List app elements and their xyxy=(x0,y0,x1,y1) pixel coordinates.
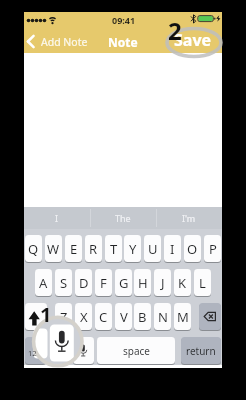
staticText: 12 xyxy=(28,348,37,358)
staticText: C xyxy=(99,308,108,326)
button[interactable]: D xyxy=(75,269,92,297)
button[interactable]: O xyxy=(184,235,201,263)
staticText: W xyxy=(47,240,60,258)
staticText: K xyxy=(178,274,187,292)
staticText: Z xyxy=(60,308,68,326)
staticText: Y xyxy=(129,240,137,258)
button[interactable]: E xyxy=(65,235,82,263)
button[interactable]: return xyxy=(181,337,221,365)
staticText: P xyxy=(209,240,217,258)
button[interactable]: F xyxy=(95,269,112,297)
button[interactable]: Add Note xyxy=(36,34,92,49)
button[interactable] xyxy=(199,303,221,331)
button[interactable]: Y xyxy=(124,235,141,263)
staticText: R xyxy=(89,240,98,258)
staticText: I'm xyxy=(182,212,196,224)
button[interactable]: A xyxy=(35,269,52,297)
button[interactable]: P xyxy=(204,235,221,263)
button[interactable]: J xyxy=(154,269,171,297)
button[interactable]: H xyxy=(134,269,151,297)
button[interactable]: K xyxy=(174,269,191,297)
staticText: V xyxy=(120,308,128,326)
staticText: U xyxy=(148,240,158,258)
staticText: D xyxy=(79,274,89,292)
button[interactable]: The xyxy=(101,208,145,227)
button[interactable]: Q xyxy=(25,235,42,263)
button[interactable]: space xyxy=(97,337,175,365)
button[interactable]: I'm xyxy=(167,208,211,227)
button[interactable] xyxy=(73,337,94,365)
button[interactable]: V xyxy=(115,303,132,331)
staticText: return xyxy=(186,344,216,358)
button[interactable]: Save xyxy=(173,29,213,51)
button[interactable]: W xyxy=(45,235,62,263)
staticText: 09:41 xyxy=(112,14,136,26)
staticText: The xyxy=(115,212,131,224)
staticText: space xyxy=(123,344,150,358)
staticText: I xyxy=(170,240,175,258)
staticText: B xyxy=(138,308,147,326)
staticText: J xyxy=(161,274,165,292)
staticText: M xyxy=(177,308,189,326)
button[interactable]: U xyxy=(144,235,161,263)
button[interactable]: C xyxy=(95,303,112,331)
staticText: H xyxy=(138,274,148,292)
button[interactable]: L xyxy=(194,269,211,297)
button[interactable] xyxy=(25,303,47,331)
button[interactable]: R xyxy=(85,235,102,263)
button[interactable]: X xyxy=(75,303,92,331)
staticText: Note xyxy=(108,34,138,49)
staticText: N xyxy=(158,308,168,326)
staticText: O xyxy=(187,240,198,258)
staticText: 2 xyxy=(168,14,182,40)
button[interactable]: I xyxy=(35,208,79,227)
button[interactable] xyxy=(25,337,46,365)
button[interactable]: Z xyxy=(55,303,72,331)
staticText: L xyxy=(199,274,206,292)
staticText: Save xyxy=(174,29,212,51)
button[interactable]: I xyxy=(164,235,181,263)
staticText: G xyxy=(119,274,129,292)
button[interactable]: G xyxy=(115,269,132,297)
button[interactable]: N xyxy=(154,303,171,331)
button[interactable]: B xyxy=(134,303,151,331)
button[interactable]: S xyxy=(55,269,72,297)
staticText: E xyxy=(70,240,78,258)
staticText: 1 xyxy=(40,301,52,323)
staticText: F xyxy=(100,274,107,292)
staticText: X xyxy=(80,308,88,326)
staticText: A xyxy=(39,274,48,292)
button[interactable]: M xyxy=(174,303,191,331)
staticText: Q xyxy=(28,240,39,258)
staticText: I xyxy=(55,212,59,224)
staticText: T xyxy=(110,240,118,258)
button[interactable]: T xyxy=(105,235,122,263)
staticText: S xyxy=(60,274,68,292)
button[interactable] xyxy=(49,337,70,365)
staticText: Add Note xyxy=(41,35,88,49)
